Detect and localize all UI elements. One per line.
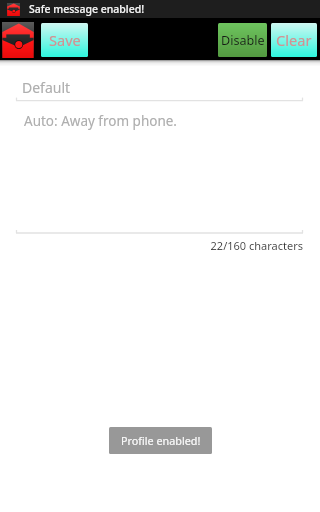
button[interactable]: App icon <box>2 22 34 58</box>
staticText: Save <box>49 30 81 50</box>
button[interactable]: Auto: Away from phone. <box>16 103 304 232</box>
button[interactable]: Clear <box>271 23 317 57</box>
button[interactable]: Disable <box>218 23 267 57</box>
button[interactable]: Profile enabled! <box>109 427 212 454</box>
staticText: Safe message enabled! <box>29 2 145 16</box>
button[interactable]: Default <box>16 66 304 102</box>
staticText: Clear <box>276 30 312 50</box>
staticText: Disable <box>221 32 265 49</box>
button[interactable]: Save <box>41 23 88 57</box>
staticText: Profile enabled! <box>121 433 201 448</box>
staticText: Auto: Away from phone. <box>24 112 177 130</box>
staticText: Default <box>22 78 71 97</box>
staticText: 22/160 characters <box>0 238 303 253</box>
